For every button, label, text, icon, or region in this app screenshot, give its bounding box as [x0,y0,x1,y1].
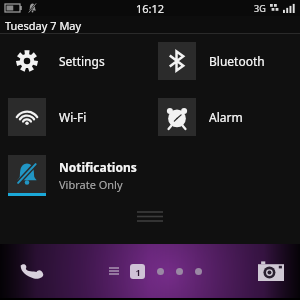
staticText: 16:12 [136,1,165,16]
button[interactable] [157,268,164,275]
button[interactable]: Alarm [150,96,300,138]
button[interactable]: Bluetooth [150,40,300,82]
button[interactable] [195,268,202,275]
button[interactable]: Settings [0,40,150,82]
staticText: Settings [59,53,105,69]
staticText: 1 [135,266,141,278]
staticText: Vibrate Only [59,177,123,192]
button[interactable]: Notifications [0,152,300,198]
staticText: Alarm [209,109,243,125]
staticText: Wi-Fi [59,109,87,125]
staticText: Bluetooth [209,53,265,69]
button[interactable]: Camera [254,254,288,288]
button[interactable]: Phone [14,254,48,288]
staticText: 3G [254,2,266,14]
button[interactable]: 1 [130,264,145,279]
staticText: Notifications [59,159,137,175]
button[interactable] [176,268,183,275]
button[interactable]: Menu [106,263,122,279]
button[interactable]: Wi-Fi [0,96,150,138]
staticText: Tuesday 7 May [5,18,82,33]
